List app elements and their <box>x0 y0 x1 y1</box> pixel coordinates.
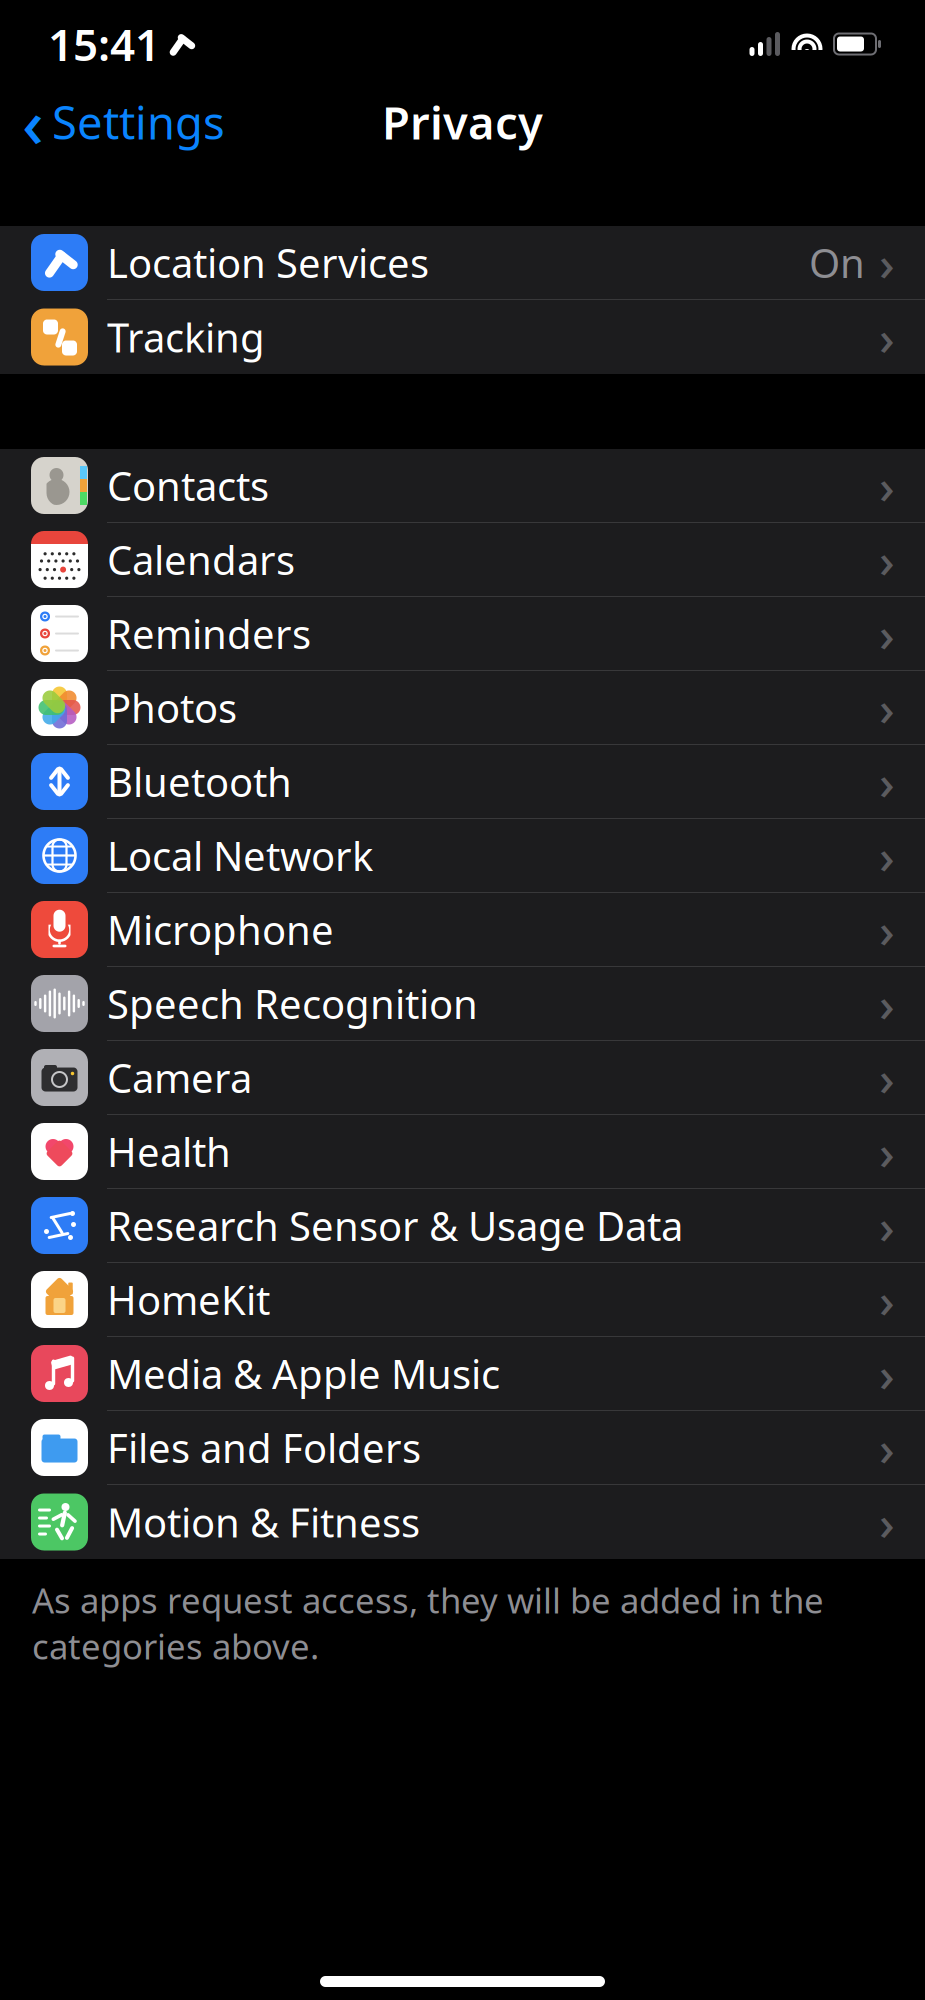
staticText: Health <box>107 1125 231 1178</box>
button[interactable]: Research Sensor & Usage Data <box>0 1189 925 1263</box>
button[interactable]: Speech Recognition <box>0 967 925 1041</box>
staticText: Tracking <box>107 310 265 363</box>
staticText: › <box>879 1268 895 1331</box>
button[interactable]: Bluetooth <box>0 745 925 819</box>
staticText: Bluetooth <box>107 755 292 808</box>
staticText: HomeKit <box>107 1273 270 1326</box>
staticText: Privacy <box>382 92 543 152</box>
button[interactable]: Tracking <box>0 300 925 374</box>
staticText: Photos <box>107 681 237 734</box>
staticText: › <box>879 528 895 591</box>
staticText: Calendars <box>107 533 295 586</box>
staticText: Reminders <box>107 607 311 660</box>
staticText: Speech Recognition <box>107 977 478 1030</box>
staticText: Files and Folders <box>107 1421 421 1474</box>
staticText: › <box>879 1120 895 1183</box>
button[interactable]: ‹ <box>0 72 225 172</box>
button[interactable]: Reminders <box>0 597 925 671</box>
staticText: › <box>879 305 895 369</box>
button[interactable]: Local Network <box>0 819 925 893</box>
button[interactable]: Photos <box>0 671 925 745</box>
staticText: Media & Apple Music <box>107 1347 500 1400</box>
button[interactable]: Motion & Fitness <box>0 1485 925 1559</box>
button[interactable]: Microphone <box>0 893 925 967</box>
staticText: On <box>809 236 865 289</box>
staticText: Location Services <box>107 236 429 289</box>
staticText: › <box>879 898 895 961</box>
staticText: 15:41 <box>48 15 160 73</box>
staticText: Contacts <box>107 459 269 512</box>
staticText: As apps request access, they will be add… <box>32 1577 824 1669</box>
staticText: › <box>879 1194 895 1257</box>
staticText: Settings <box>52 92 225 152</box>
staticText: Camera <box>107 1051 252 1104</box>
staticText: Local Network <box>107 829 373 882</box>
staticText: › <box>879 1046 895 1109</box>
staticText: › <box>879 1342 895 1405</box>
staticText: Motion & Fitness <box>107 1495 420 1548</box>
button[interactable]: Camera <box>0 1041 925 1115</box>
staticText: › <box>879 824 895 887</box>
button[interactable]: Calendars <box>0 523 925 597</box>
staticText: › <box>879 1416 895 1479</box>
button[interactable]: Files and Folders <box>0 1411 925 1485</box>
button[interactable]: Contacts <box>0 449 925 523</box>
staticText: › <box>879 750 895 813</box>
button[interactable]: HomeKit <box>0 1263 925 1337</box>
staticText: Microphone <box>107 903 334 956</box>
button[interactable]: Media & Apple Music <box>0 1337 925 1411</box>
staticText: › <box>879 454 895 517</box>
staticText: › <box>879 972 895 1035</box>
staticText: › <box>879 231 895 294</box>
staticText: › <box>879 676 895 739</box>
staticText: Research Sensor & Usage Data <box>107 1199 683 1252</box>
button[interactable]: Health <box>0 1115 925 1189</box>
staticText: › <box>879 1490 895 1554</box>
staticText: ‹ <box>22 78 44 166</box>
staticText: › <box>879 602 895 665</box>
button[interactable]: Location Services <box>0 226 925 300</box>
